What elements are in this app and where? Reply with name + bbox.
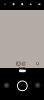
- button[interactable]: .5 zoom: [16, 61, 21, 66]
- staticText: 1x: [22, 62, 25, 65]
- button[interactable]: Take photo: [17, 81, 27, 91]
- button[interactable]: Switch camera: [35, 82, 40, 88]
- button[interactable]: Aspect ratio: [18, 0, 26, 9]
- button[interactable]: Live Photo: [9, 0, 18, 9]
- button[interactable]: 1x zoom: [21, 61, 26, 66]
- button[interactable]: Flash: [1, 0, 9, 9]
- button[interactable]: Photo library: [4, 82, 9, 88]
- staticText: PHOTO: [19, 67, 26, 74]
- button[interactable]: Night mode: [36, 62, 39, 65]
- button[interactable]: Photo mode: [19, 69, 26, 72]
- button[interactable]: Exposure: [26, 0, 35, 9]
- button[interactable]: Filters: [35, 0, 44, 9]
- staticText: .5: [17, 62, 20, 65]
